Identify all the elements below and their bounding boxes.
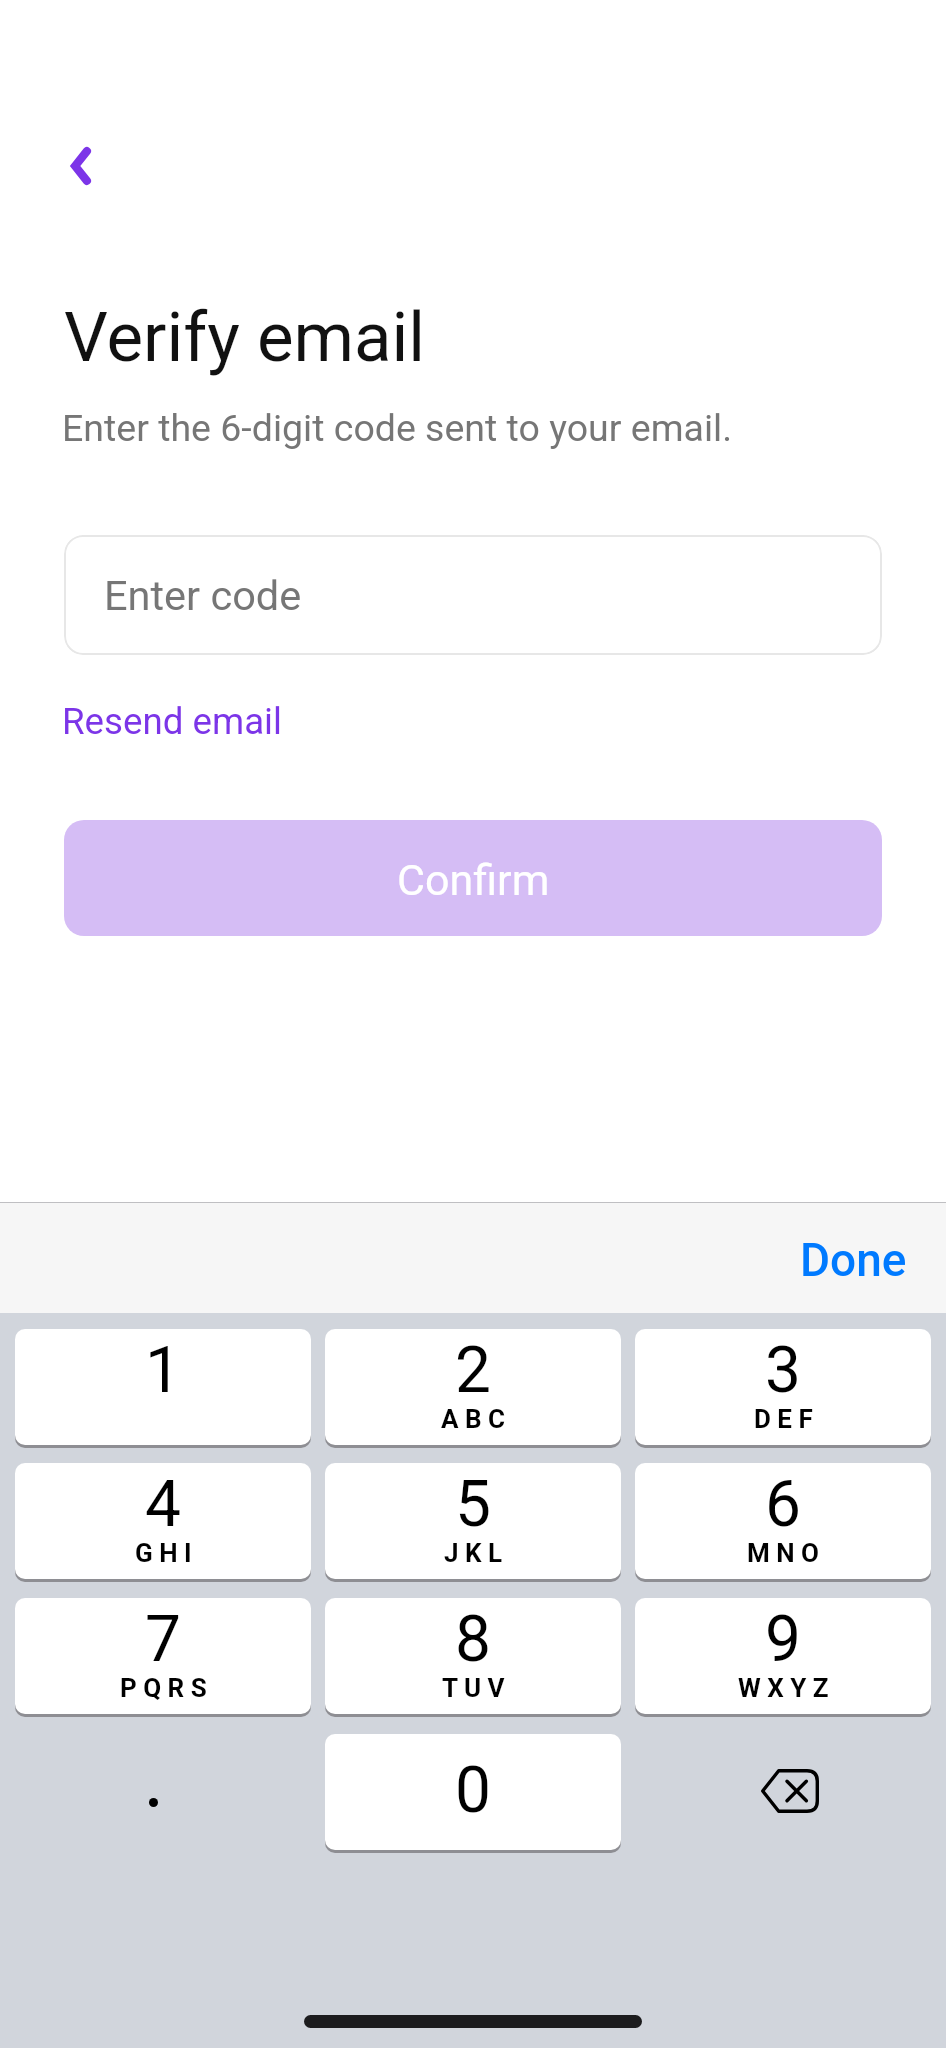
staticText: 0 bbox=[455, 1753, 491, 1828]
button[interactable]: 6 bbox=[635, 1463, 931, 1579]
staticText: Done bbox=[800, 1233, 907, 1287]
button[interactable]: Confirm bbox=[64, 820, 882, 936]
button[interactable]: Back bbox=[44, 129, 118, 203]
staticText: 1 bbox=[145, 1333, 181, 1408]
staticText: T U V bbox=[442, 1673, 505, 1703]
staticText: G H I bbox=[135, 1538, 192, 1568]
button[interactable]: Backspace bbox=[635, 1734, 931, 1850]
staticText: 9 bbox=[765, 1602, 801, 1677]
button[interactable]: Decimal point bbox=[15, 1734, 311, 1850]
button[interactable]: 0 bbox=[325, 1734, 621, 1850]
button[interactable]: 5 bbox=[325, 1463, 621, 1579]
staticText: 8 bbox=[455, 1602, 491, 1677]
button[interactable]: Enter code bbox=[64, 535, 882, 655]
staticText: 3 bbox=[765, 1333, 801, 1408]
staticText: Resend email bbox=[62, 700, 282, 743]
button[interactable]: Resend email bbox=[62, 700, 282, 743]
button[interactable]: 2 bbox=[325, 1329, 621, 1445]
button[interactable]: 7 bbox=[15, 1598, 311, 1714]
button[interactable]: Done bbox=[800, 1233, 907, 1287]
button[interactable]: 3 bbox=[635, 1329, 931, 1445]
staticText: D E F bbox=[754, 1404, 813, 1434]
button[interactable]: 9 bbox=[635, 1598, 931, 1714]
staticText: W X Y Z bbox=[738, 1673, 829, 1703]
staticText: P Q R S bbox=[120, 1673, 207, 1703]
staticText: Enter the 6-digit code sent to your emai… bbox=[62, 406, 733, 450]
staticText: A B C bbox=[441, 1404, 505, 1434]
staticText: M N O bbox=[747, 1538, 819, 1568]
staticText: 6 bbox=[765, 1467, 801, 1542]
button[interactable]: 8 bbox=[325, 1598, 621, 1714]
staticText: Verify email bbox=[64, 297, 426, 378]
staticText: 7 bbox=[145, 1602, 181, 1677]
staticText: 4 bbox=[145, 1467, 181, 1542]
staticText: Confirm bbox=[397, 855, 550, 905]
button[interactable]: 1 bbox=[15, 1329, 311, 1445]
staticText: 2 bbox=[455, 1333, 491, 1408]
staticText: Enter code bbox=[104, 571, 302, 620]
staticText: J K L bbox=[444, 1538, 503, 1568]
staticText: 5 bbox=[455, 1467, 491, 1542]
button[interactable]: 4 bbox=[15, 1463, 311, 1579]
